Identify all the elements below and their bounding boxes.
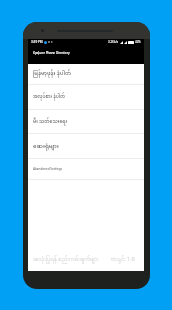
- staticText: ဆေးရုံများ: [33, 140, 59, 152]
- staticText: အလုပ်စား နံပါတ်: [33, 92, 65, 102]
- staticText: 3.2Kb/s: [108, 40, 119, 44]
- button[interactable]: ဆေးရုံများ: [28, 134, 144, 158]
- button[interactable]: မြန်မာ့ဖုန်း နံပါတ်: [28, 64, 144, 84]
- staticText: KyaJune Phone Directory: [33, 51, 70, 55]
- button[interactable]: အလုပ်စား နံပါတ်: [28, 85, 144, 109]
- button[interactable]: မီး သတ်သေးရေး: [28, 110, 144, 133]
- staticText: Abandoned Settings: [33, 167, 63, 171]
- staticText: မီး သတ်သေးရေး: [33, 117, 68, 127]
- button[interactable]: Abandoned Settings: [28, 159, 144, 179]
- staticText: ဗားရှင်း 1.0: [111, 255, 135, 264]
- staticText: 3:39 PM: [31, 40, 43, 44]
- staticText: 42%: [135, 40, 141, 44]
- staticText: မြန်မာ့ဖုန်း နံပါတ်: [33, 68, 71, 80]
- staticText: အသုံးပြုရန် စည်းကမ်းချက်များ: [33, 255, 99, 264]
- button[interactable]: KyaJune Phone Directory: [28, 45, 144, 64]
